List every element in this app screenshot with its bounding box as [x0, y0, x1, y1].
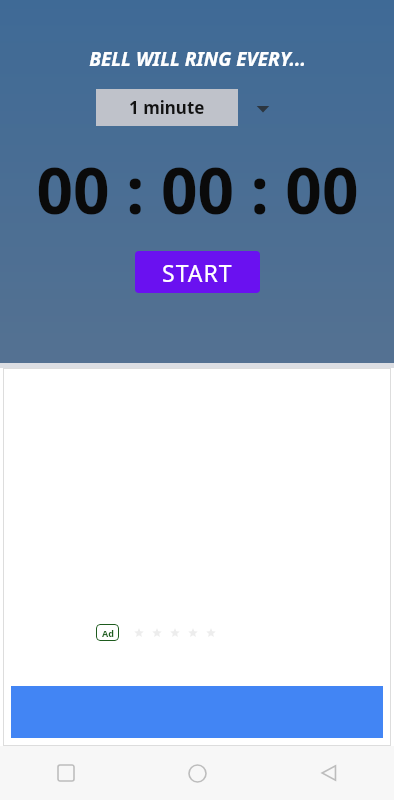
staticText: START [162, 257, 233, 288]
button[interactable]: Back [263, 746, 394, 800]
staticText: 1 minute [129, 96, 205, 119]
button[interactable]: Home [132, 746, 263, 800]
staticText: Ad [102, 627, 114, 639]
other: Open interval dropdown [255, 100, 271, 116]
staticText: BELL WILL RING EVERY... [89, 46, 306, 72]
staticText: 00 : 00 : 00 [36, 146, 359, 233]
button[interactable]: START [135, 251, 260, 293]
button[interactable]: 1 minute [96, 89, 271, 126]
button[interactable]: Recent apps [0, 746, 132, 800]
